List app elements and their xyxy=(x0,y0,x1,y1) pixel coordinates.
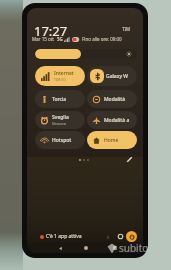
button[interactable]: Sveglia xyxy=(35,111,85,129)
button[interactable]: Settings xyxy=(116,232,125,241)
button[interactable]: Edit quick settings xyxy=(123,153,136,166)
button[interactable]: Back xyxy=(54,242,66,253)
staticText: Nessuna xyxy=(52,121,67,126)
button[interactable]: Brightness xyxy=(35,49,137,59)
button[interactable]: Home xyxy=(80,242,92,253)
staticText: 17:27 xyxy=(34,22,68,40)
staticText: Galaxy W xyxy=(106,73,129,80)
button[interactable]: C'è 1 app attiva xyxy=(40,233,82,240)
staticText: Sveglia xyxy=(52,114,69,121)
staticText: Home xyxy=(104,137,119,144)
staticText: subito xyxy=(119,241,149,255)
button[interactable]: Hotspot xyxy=(35,131,85,149)
staticText: Fino alle ore: 09:00 xyxy=(82,36,122,42)
button[interactable]: Home xyxy=(87,131,137,149)
staticText: Modalità a xyxy=(104,117,130,124)
button[interactable]: Power xyxy=(126,231,137,242)
button[interactable]: Recents xyxy=(109,242,121,253)
button[interactable]: Torcia xyxy=(35,90,85,108)
button[interactable]: Internet xyxy=(35,66,85,86)
staticText: Internet xyxy=(54,70,74,77)
button[interactable]: Modalità xyxy=(87,90,137,108)
button[interactable]: Modalità a xyxy=(87,111,137,129)
staticText: Mar 15 ott xyxy=(32,36,54,42)
button[interactable]: User xyxy=(103,232,112,241)
button[interactable]: Galaxy W xyxy=(87,66,137,86)
staticText: TIM 5G xyxy=(54,77,66,82)
staticText: 5G xyxy=(57,36,63,42)
staticText: C'è 1 app attiva xyxy=(46,233,82,240)
staticText: Hotspot xyxy=(52,137,72,144)
staticText: Modalità xyxy=(104,96,126,103)
staticText: Torcia xyxy=(52,96,67,103)
staticText: TIM xyxy=(122,26,131,32)
